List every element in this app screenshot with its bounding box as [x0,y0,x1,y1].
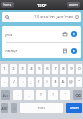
button[interactable]: 0 [76,64,82,74]
button[interactable]: 4 [28,64,34,74]
staticText: ( [38,79,40,85]
staticText: / [13,79,15,85]
staticText: #+= [2,93,9,98]
button[interactable]: ' [60,90,70,100]
staticText: ) [46,79,48,85]
staticText: @ [69,79,73,85]
staticText: 7 [54,66,57,72]
button[interactable]: - [1,77,8,87]
staticText: : [22,79,24,85]
staticText: חיפוש [70,106,79,110]
staticText: 3 [21,66,24,72]
staticText: ' [65,92,66,98]
button[interactable]: ◌ [11,103,17,113]
button[interactable]: Directions [71,31,77,37]
button[interactable]: בנק [2,26,81,42]
button[interactable]: קופסה [2,43,81,58]
button[interactable]: 6 [44,64,50,74]
staticText: 6 [46,66,49,72]
staticText: " [78,79,80,85]
staticText: רווח [38,106,45,110]
button[interactable]: ) [44,77,50,87]
button[interactable]: ביטול [1,2,14,8]
button[interactable]: 1 [1,64,8,74]
staticText: 13 שביל זהב, תל אביב [34,14,74,20]
staticText: חיפוש [69,3,78,7]
staticText: 1 [3,66,6,72]
staticText: , [28,92,30,98]
button[interactable]: " [76,77,82,87]
button[interactable]: #+= [1,90,10,100]
button[interactable]: : [19,77,26,87]
button[interactable]: . [13,90,22,100]
button[interactable]: חיפוש [66,103,82,113]
staticText: ביטול [3,3,12,7]
button[interactable]: ABC [1,103,8,113]
button[interactable]: & [60,77,66,87]
staticText: ! [52,92,54,98]
staticText: קופסה [5,48,18,53]
staticText: 8 [62,66,65,72]
staticText: ⌫ [75,93,81,98]
button[interactable]: חיפוש [67,2,80,8]
staticText: - [4,79,6,85]
staticText: 0 [78,66,81,72]
button[interactable]: / [10,77,17,87]
staticText: ? [40,92,42,98]
button[interactable]: $ [52,77,58,87]
button[interactable]: ; [28,77,34,87]
staticText: $ [54,79,57,85]
button[interactable]: Directions [71,48,77,54]
staticText: 4 [30,66,33,72]
button[interactable]: Clear [75,15,79,19]
button[interactable]: ( [36,77,42,87]
button[interactable]: ⌫ [73,90,82,100]
button[interactable]: 7 [52,64,58,74]
button[interactable]: , [24,90,34,100]
button[interactable]: 9 [68,64,74,74]
staticText: ABC [1,106,8,111]
staticText: & [61,79,65,85]
staticText: בנק [5,32,13,37]
staticText: ◌ [13,105,16,111]
button[interactable]: 3 [19,64,26,74]
button[interactable]: רווח [20,103,63,113]
staticText: . [17,92,19,98]
button[interactable]: ? [36,90,46,100]
staticText: 2 [12,66,15,72]
button[interactable]: 5 [36,64,42,74]
staticText: ; [30,79,32,85]
staticText: יסוד [37,2,47,8]
button[interactable]: @ [68,77,74,87]
staticText: 5 [38,66,41,72]
staticText: 9 [70,66,73,72]
button[interactable]: 13 שביל זהב, תל אביב [2,12,81,22]
button[interactable]: 8 [60,64,66,74]
button[interactable]: ! [48,90,58,100]
button[interactable]: 2 [10,64,17,74]
